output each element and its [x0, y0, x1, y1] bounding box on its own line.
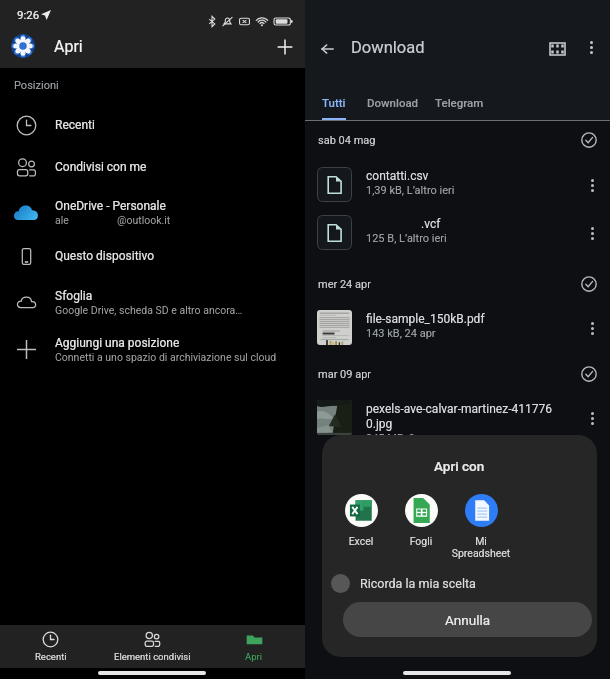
staticText: 125 B, L’altro ieri [366, 232, 447, 245]
button[interactable]: Telegram [430, 88, 488, 116]
staticText: .vcf [421, 217, 441, 231]
staticText: Elementi condivisi [114, 651, 191, 662]
staticText: Excel [331, 535, 391, 547]
staticText: Condivisi con me [55, 160, 147, 174]
staticText: 1,39 kB, L’altro ieri [366, 184, 455, 197]
staticText: ale [55, 214, 69, 226]
staticText: 143 kB, 24 apr [366, 327, 436, 340]
staticText: Ricorda la mia scelta [360, 576, 476, 591]
button[interactable]: More options [579, 315, 605, 341]
button[interactable]: Ricorda la mia scelta [322, 568, 597, 599]
staticText: Apri [245, 651, 263, 662]
staticText: contatti.csv [366, 169, 429, 183]
staticText: Recenti [35, 651, 67, 662]
staticText: 9:26 [17, 8, 40, 21]
staticText: OneDrive - Personale [55, 199, 166, 213]
button[interactable]: Sfoglia [0, 281, 305, 323]
button[interactable]: file-sample_150kB.pdf [305, 310, 610, 346]
button[interactable]: contatti.csv [305, 167, 610, 203]
staticText: Aggiungi una posizione [55, 336, 180, 350]
staticText: Annulla [445, 612, 491, 628]
button[interactable]: Download [362, 88, 424, 116]
button[interactable]: Tutti [317, 88, 351, 116]
staticText: Fogli [391, 535, 451, 547]
button[interactable]: OneDrive - Personale [0, 191, 305, 233]
staticText: Tutti [322, 96, 346, 109]
button[interactable]: Back [310, 32, 344, 66]
button[interactable]: More options [579, 220, 605, 246]
button[interactable]: Annulla [343, 602, 592, 637]
button[interactable]: Mi [451, 494, 511, 559]
staticText: Connetti a uno spazio di archiviazione s… [55, 351, 277, 363]
staticText: Apri [54, 37, 83, 56]
staticText: Recenti [55, 118, 95, 132]
staticText: Download [351, 38, 425, 57]
button[interactable]: More options [577, 33, 605, 61]
staticText: mar 09 apr [318, 368, 372, 381]
staticText: Mi [451, 535, 511, 547]
button[interactable]: App icon [11, 34, 35, 58]
button[interactable]: More options [579, 172, 605, 198]
staticText: @outlook.it [117, 214, 171, 226]
staticText: Apri con [434, 458, 485, 474]
staticText: Telegram [435, 96, 484, 109]
button[interactable]: Select all [577, 272, 601, 296]
staticText: Spreadsheet… [451, 547, 511, 559]
staticText: Sfoglia [55, 289, 93, 303]
button[interactable]: .vcf [305, 215, 610, 251]
staticText: pexels-ave-calvar-martinez-411776 0.jpg [366, 402, 552, 431]
button[interactable]: Condivisi con me [0, 146, 305, 188]
staticText: mer 24 apr [318, 278, 371, 291]
button[interactable]: Fogli [391, 494, 451, 547]
button[interactable]: Questo dispositivo [0, 235, 305, 277]
button[interactable]: Add [267, 29, 302, 64]
button[interactable]: pexels-ave-calvar-martinez-411776 0.jpg [305, 400, 610, 448]
staticText: 245 MB, 9 apr [366, 432, 434, 445]
staticText: file-sample_150kB.pdf [366, 312, 485, 326]
staticText: Questo dispositivo [55, 249, 155, 263]
staticText: sab 04 mag [318, 134, 376, 147]
button[interactable]: Recenti [0, 625, 101, 668]
button[interactable]: Recenti [0, 104, 305, 146]
button[interactable]: More options [579, 405, 605, 431]
staticText: Posizioni [14, 79, 59, 92]
button[interactable]: Excel [331, 494, 391, 547]
button[interactable]: Grid view [541, 33, 573, 65]
staticText: Google Drive, scheda SD e altro ancora… [55, 304, 243, 316]
staticText: Download [367, 96, 419, 109]
button[interactable]: Elementi condivisi [101, 625, 203, 668]
button[interactable]: Apri [203, 625, 305, 668]
button[interactable]: Aggiungi una posizione [0, 328, 305, 370]
button[interactable]: Select all [577, 362, 601, 386]
button[interactable]: Select all [577, 128, 601, 152]
